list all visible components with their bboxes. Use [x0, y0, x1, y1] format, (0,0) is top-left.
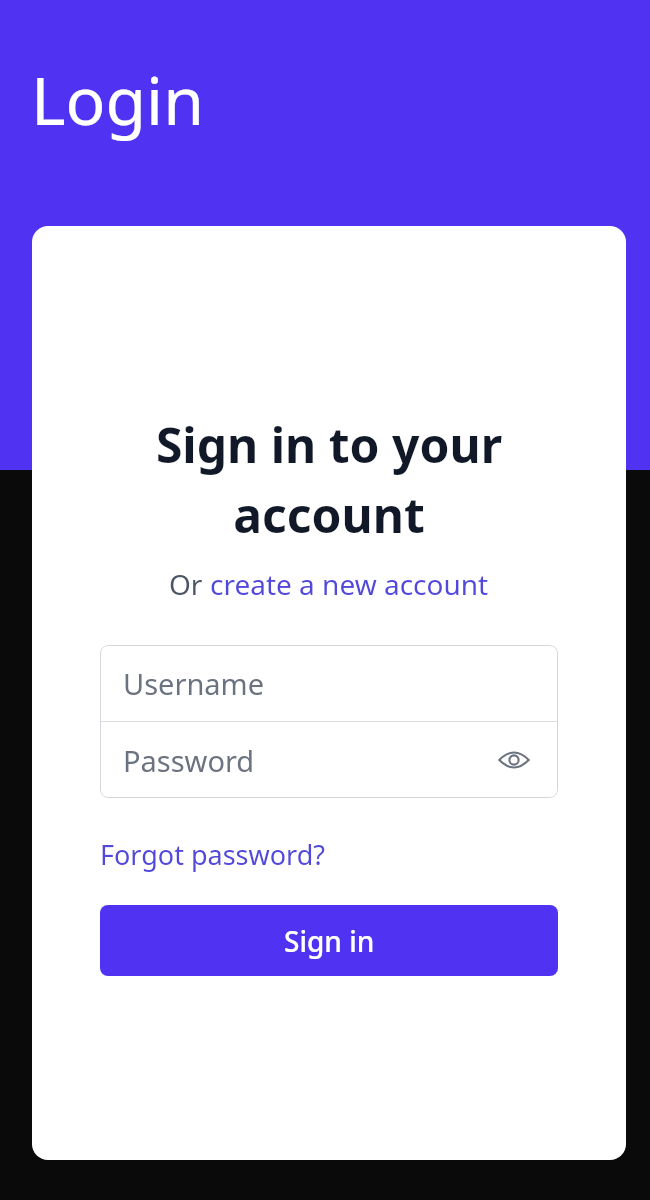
button[interactable]: Username — [100, 645, 558, 721]
button[interactable]: Show password — [493, 739, 535, 781]
staticText: Login — [31, 54, 204, 144]
staticText: Or — [169, 565, 210, 603]
staticText: create a new account — [210, 565, 489, 603]
button[interactable]: create a new account — [210, 565, 489, 603]
button[interactable]: Password — [100, 722, 558, 798]
button[interactable]: Forgot password? — [100, 836, 326, 873]
staticText: Username — [123, 664, 265, 703]
staticText: Forgot password? — [100, 836, 326, 873]
button[interactable]: Sign in — [100, 905, 558, 976]
staticText: Password — [123, 741, 255, 780]
staticText: Sign in — [284, 922, 375, 960]
staticText: Sign in to your account — [72, 412, 586, 547]
